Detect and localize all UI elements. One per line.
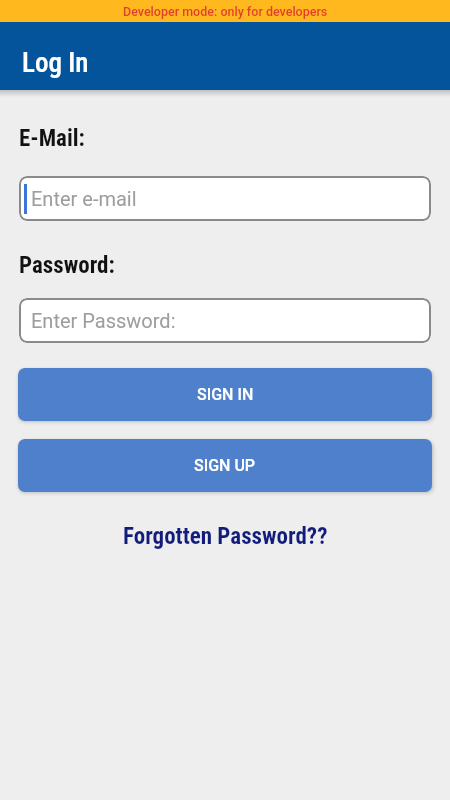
staticText: Password: — [19, 252, 115, 279]
button[interactable]: Enter Password: — [19, 298, 431, 343]
staticText: SIGN UP — [194, 456, 256, 475]
staticText: Developer mode: only for developers — [123, 4, 328, 19]
button[interactable]: Enter e-mail — [19, 176, 431, 221]
staticText: E-Mail: — [19, 125, 85, 152]
staticText: Enter e-mail — [31, 187, 137, 210]
button[interactable]: SIGN IN — [18, 368, 432, 421]
staticText: Log In — [22, 47, 89, 79]
staticText: Enter Password: — [31, 309, 176, 332]
staticText: SIGN IN — [197, 385, 254, 404]
button[interactable]: Forgotten Password?? — [123, 523, 328, 550]
button[interactable]: SIGN UP — [18, 439, 432, 492]
